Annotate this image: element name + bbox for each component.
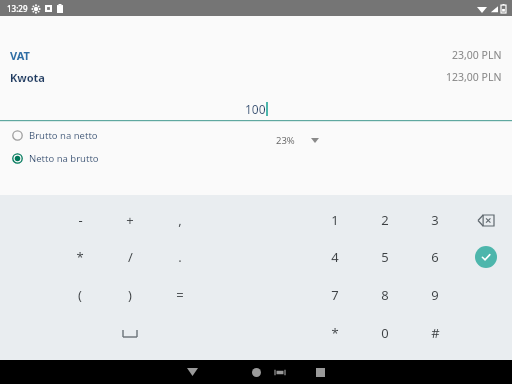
- button[interactable]: 3: [410, 201, 460, 238]
- button[interactable]: .: [155, 238, 205, 276]
- staticText: 123,00 PLN: [446, 70, 502, 84]
- button[interactable]: *: [55, 238, 105, 276]
- staticText: +: [126, 211, 134, 229]
- staticText: Kwota: [10, 70, 45, 85]
- button[interactable]: Home: [244, 360, 268, 384]
- staticText: *: [331, 324, 339, 342]
- button[interactable]: *: [310, 314, 360, 352]
- button[interactable]: 7: [310, 276, 360, 314]
- staticText: -: [78, 211, 83, 229]
- staticText: 8: [381, 286, 389, 304]
- staticText: ,: [178, 211, 182, 229]
- button[interactable]: (: [55, 276, 105, 314]
- button[interactable]: 6: [410, 238, 460, 276]
- staticText: 23,00 PLN: [452, 48, 502, 62]
- staticText: (: [78, 286, 82, 304]
- button[interactable]: #: [410, 314, 460, 352]
- button[interactable]: 0: [360, 314, 410, 352]
- staticText: 23%: [276, 134, 295, 147]
- staticText: 4: [331, 248, 339, 266]
- button[interactable]: 23%: [272, 130, 323, 151]
- staticText: Brutto na netto: [29, 129, 98, 142]
- button[interactable]: 5: [360, 238, 410, 276]
- staticText: 6: [431, 248, 439, 266]
- staticText: 1: [331, 211, 339, 229]
- button[interactable]: Netto na brutto: [12, 151, 107, 166]
- staticText: Netto na brutto: [29, 152, 99, 165]
- button[interactable]: VAT: [0, 44, 512, 66]
- button[interactable]: -: [55, 201, 105, 238]
- button[interactable]: 100: [0, 98, 512, 120]
- staticText: .: [178, 248, 182, 266]
- staticText: /: [128, 248, 133, 266]
- button[interactable]: Back: [180, 360, 204, 384]
- button[interactable]: ): [105, 276, 155, 314]
- staticText: 2: [381, 211, 389, 229]
- button[interactable]: 1: [310, 201, 360, 238]
- staticText: 3: [431, 211, 439, 229]
- button[interactable]: ,: [155, 201, 205, 238]
- button[interactable]: /: [105, 238, 155, 276]
- staticText: =: [176, 286, 184, 304]
- staticText: 5: [381, 248, 389, 266]
- staticText: #: [431, 324, 440, 342]
- staticText: 0: [381, 324, 389, 342]
- staticText: *: [76, 248, 84, 266]
- button[interactable]: 9: [410, 276, 460, 314]
- button[interactable]: Kwota: [0, 66, 512, 88]
- button[interactable]: Backspace: [471, 205, 501, 235]
- button[interactable]: 2: [360, 201, 410, 238]
- button[interactable]: [105, 314, 155, 352]
- button[interactable]: Brutto na netto: [12, 128, 106, 143]
- button[interactable]: 4: [310, 238, 360, 276]
- button[interactable]: Recents: [308, 360, 332, 384]
- staticText: 100: [245, 101, 266, 117]
- button[interactable]: 8: [360, 276, 410, 314]
- button[interactable]: =: [155, 276, 205, 314]
- staticText: VAT: [10, 48, 30, 63]
- button[interactable]: Confirm: [475, 246, 497, 268]
- staticText: 13:29: [7, 3, 28, 14]
- staticText: ): [128, 286, 132, 304]
- staticText: 7: [331, 286, 339, 304]
- button[interactable]: +: [105, 201, 155, 238]
- button[interactable]: Keyboard: [268, 360, 292, 384]
- staticText: 9: [431, 286, 439, 304]
